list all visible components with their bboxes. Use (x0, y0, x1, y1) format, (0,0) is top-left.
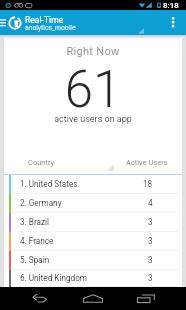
staticText: Real-Time (25, 15, 64, 25)
staticText: 4. France (20, 236, 54, 246)
staticText: analytics_mobile (25, 24, 76, 32)
button[interactable]: 3. Brazil (4, 213, 182, 232)
staticText: Active Users (126, 158, 168, 167)
staticText: 3 (148, 217, 153, 227)
staticText: 4 (148, 198, 153, 208)
staticText: 2. Germany (20, 198, 62, 208)
button[interactable]: 6. United Kingdom (4, 270, 182, 287)
button[interactable]: Open navigation drawer (0, 10, 7, 35)
staticText: 3 (148, 236, 153, 246)
staticText: 5. Spain (20, 255, 50, 265)
staticText: Country (28, 158, 55, 167)
button[interactable]: 2. Germany (4, 194, 182, 213)
staticText: 1. United States (20, 179, 78, 189)
staticText: Right Now (4, 45, 182, 58)
staticText: active users on app (4, 114, 182, 125)
staticText: 3 (148, 255, 153, 265)
staticText: 3. Brazil (20, 217, 50, 227)
staticText: 8:18 (163, 1, 179, 10)
other: Google Analytics (8, 16, 22, 30)
staticText: 3 (148, 273, 153, 283)
button[interactable]: Back (27, 287, 53, 310)
button[interactable]: Recent apps (133, 287, 159, 310)
button[interactable]: Home (80, 287, 106, 310)
button[interactable]: 5. Spain (4, 251, 182, 270)
staticText: 61 (4, 60, 182, 120)
staticText: 18 (143, 179, 153, 189)
button[interactable]: 1. United States (4, 175, 182, 194)
staticText: 6. United Kingdom (20, 273, 87, 283)
button[interactable]: More options (166, 10, 186, 35)
button[interactable]: 4. France (4, 232, 182, 251)
